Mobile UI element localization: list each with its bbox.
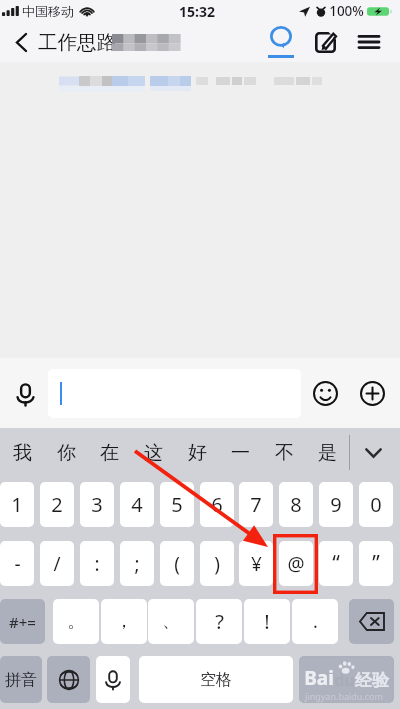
- staticText: 工作思路: [38, 30, 116, 55]
- button[interactable]: Voice: [96, 656, 130, 703]
- button[interactable]: Delete: [349, 599, 394, 644]
- button[interactable]: 9: [319, 482, 353, 527]
- staticText: jingyan.baidu.com: [305, 690, 383, 702]
- staticText: 。: [67, 610, 85, 633]
- staticText: 好: [188, 441, 207, 465]
- button[interactable]: #+=: [0, 599, 45, 644]
- button[interactable]: More: [357, 378, 388, 409]
- button[interactable]: 3: [80, 482, 114, 527]
- button[interactable]: 你: [44, 428, 88, 478]
- button[interactable]: Expand candidates: [350, 428, 396, 478]
- button[interactable]: 2: [40, 482, 74, 527]
- button[interactable]: ，: [101, 599, 147, 644]
- button[interactable]: !: [244, 599, 290, 644]
- button[interactable]: ?: [196, 599, 242, 644]
- button[interactable]: /: [40, 541, 74, 586]
- button[interactable]: .: [292, 599, 338, 644]
- staticText: 9: [330, 491, 342, 518]
- staticText: 7: [250, 491, 262, 518]
- button[interactable]: [299, 656, 394, 703]
- button[interactable]: Compose: [310, 22, 340, 62]
- button[interactable]: Messages: [264, 22, 297, 62]
- staticText: 中国移动: [22, 3, 74, 19]
- button[interactable]: 5: [160, 482, 194, 527]
- staticText: (: [174, 551, 180, 577]
- button[interactable]: 4: [120, 482, 154, 527]
- button[interactable]: :: [80, 541, 114, 586]
- button[interactable]: 好: [175, 428, 219, 478]
- button[interactable]: 、: [148, 599, 194, 644]
- staticText: 4: [131, 491, 143, 518]
- button[interactable]: -: [0, 541, 34, 586]
- staticText: 2: [51, 491, 63, 518]
- staticText: ): [214, 551, 220, 577]
- staticText: 是: [318, 441, 337, 465]
- button[interactable]: ¥: [239, 541, 273, 586]
- staticText: 不: [275, 441, 294, 465]
- staticText: -: [14, 551, 21, 577]
- button[interactable]: Switch language: [47, 656, 90, 703]
- button[interactable]: 不: [262, 428, 306, 478]
- button[interactable]: Back: [8, 29, 34, 55]
- staticText: 15:32: [179, 2, 215, 21]
- staticText: @: [287, 551, 305, 577]
- staticText: .: [313, 609, 318, 634]
- button[interactable]: @: [279, 541, 313, 586]
- staticText: 我: [13, 441, 32, 465]
- staticText: du: [334, 669, 355, 691]
- button[interactable]: 。: [53, 599, 99, 644]
- staticText: :: [94, 551, 100, 577]
- staticText: 3: [91, 491, 103, 518]
- button[interactable]: “: [319, 541, 353, 586]
- staticText: Bai: [304, 665, 334, 691]
- button[interactable]: Voice input: [10, 379, 40, 409]
- button[interactable]: [48, 369, 301, 418]
- button[interactable]: 在: [87, 428, 131, 478]
- button[interactable]: 拼音: [0, 656, 42, 703]
- staticText: ，: [115, 610, 133, 633]
- staticText: !: [264, 608, 270, 635]
- staticText: 拼音: [5, 670, 37, 690]
- staticText: 经验: [355, 670, 389, 691]
- button[interactable]: 7: [239, 482, 273, 527]
- staticText: ¥: [251, 551, 262, 577]
- button[interactable]: 8: [279, 482, 313, 527]
- staticText: 空格: [200, 670, 232, 690]
- button[interactable]: 空格: [139, 656, 293, 703]
- button[interactable]: ”: [359, 541, 393, 586]
- staticText: 0: [370, 491, 382, 518]
- staticText: 在: [100, 441, 119, 465]
- staticText: “: [332, 549, 340, 578]
- staticText: 8: [290, 491, 302, 518]
- button[interactable]: 这: [131, 428, 175, 478]
- button[interactable]: 1: [0, 482, 34, 527]
- button[interactable]: 我: [0, 428, 44, 478]
- staticText: 一: [231, 441, 250, 465]
- staticText: ?: [215, 608, 224, 635]
- staticText: 6: [211, 491, 223, 518]
- button[interactable]: ;: [120, 541, 154, 586]
- staticText: /: [53, 551, 61, 577]
- button[interactable]: (: [160, 541, 194, 586]
- button[interactable]: Menu: [354, 22, 384, 62]
- button[interactable]: Emoji: [310, 378, 341, 409]
- staticText: ;: [134, 551, 140, 577]
- staticText: #+=: [9, 612, 36, 632]
- staticText: 这: [144, 441, 163, 465]
- button[interactable]: 一: [218, 428, 262, 478]
- staticText: 1: [11, 491, 23, 518]
- staticText: ”: [372, 549, 380, 578]
- staticText: 你: [57, 441, 76, 465]
- staticText: 100%: [329, 2, 364, 20]
- staticText: 、: [162, 610, 180, 633]
- button[interactable]: 6: [200, 482, 234, 527]
- button[interactable]: 是: [305, 428, 349, 478]
- staticText: 5: [171, 491, 183, 518]
- button[interactable]: 0: [359, 482, 393, 527]
- button[interactable]: ): [200, 541, 234, 586]
